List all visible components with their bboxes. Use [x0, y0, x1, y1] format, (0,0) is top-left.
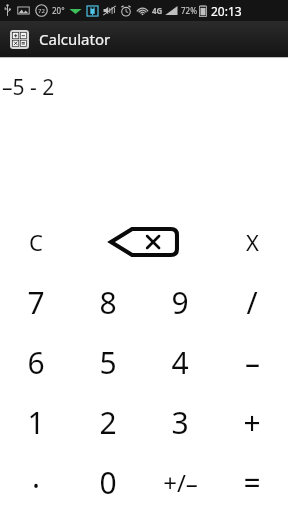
staticText: 5 — [99, 342, 117, 383]
button[interactable]: 7 — [0, 272, 72, 332]
staticText: 2 — [99, 402, 117, 443]
staticText: C — [29, 227, 43, 257]
button[interactable]: 9 — [144, 272, 216, 332]
staticText: . — [32, 456, 41, 497]
staticText: –5 - 2 — [2, 73, 55, 102]
staticText: / — [246, 282, 258, 323]
staticText: 20:13 — [211, 3, 242, 19]
staticText: 1 — [27, 402, 45, 443]
button[interactable]: 8 — [72, 272, 144, 332]
button[interactable]: C — [0, 212, 72, 272]
staticText: 72% — [181, 5, 197, 16]
staticText: X — [246, 227, 259, 257]
button[interactable]: Backspace — [72, 212, 216, 272]
staticText: 8 — [99, 282, 117, 323]
button[interactable]: 1 — [0, 392, 72, 452]
staticText: Calculator — [39, 29, 111, 49]
button[interactable]: 6 — [0, 332, 72, 392]
button[interactable]: 5 — [72, 332, 144, 392]
button[interactable]: . — [0, 452, 72, 512]
button[interactable]: 0 — [72, 452, 144, 512]
staticText: +/– — [163, 466, 198, 499]
staticText: 3 — [171, 402, 189, 443]
button[interactable]: 3 — [144, 392, 216, 452]
button[interactable]: = — [216, 452, 288, 512]
staticText: – — [245, 342, 260, 383]
staticText: 20° — [52, 5, 65, 16]
staticText: = — [243, 462, 261, 503]
staticText: + — [243, 402, 261, 443]
button[interactable]: / — [216, 272, 288, 332]
staticText: 4 — [171, 342, 189, 383]
staticText: 9 — [171, 282, 189, 323]
staticText: 6 — [27, 342, 45, 383]
button[interactable]: 2 — [72, 392, 144, 452]
staticText: 72 — [38, 7, 45, 15]
button[interactable]: +/– — [144, 452, 216, 512]
staticText: 4G — [152, 5, 163, 16]
button[interactable]: 4 — [144, 332, 216, 392]
staticText: 0 — [99, 462, 117, 503]
button[interactable]: X — [216, 212, 288, 272]
button[interactable]: – — [216, 332, 288, 392]
button[interactable]: + — [216, 392, 288, 452]
staticText: 7 — [27, 282, 45, 323]
